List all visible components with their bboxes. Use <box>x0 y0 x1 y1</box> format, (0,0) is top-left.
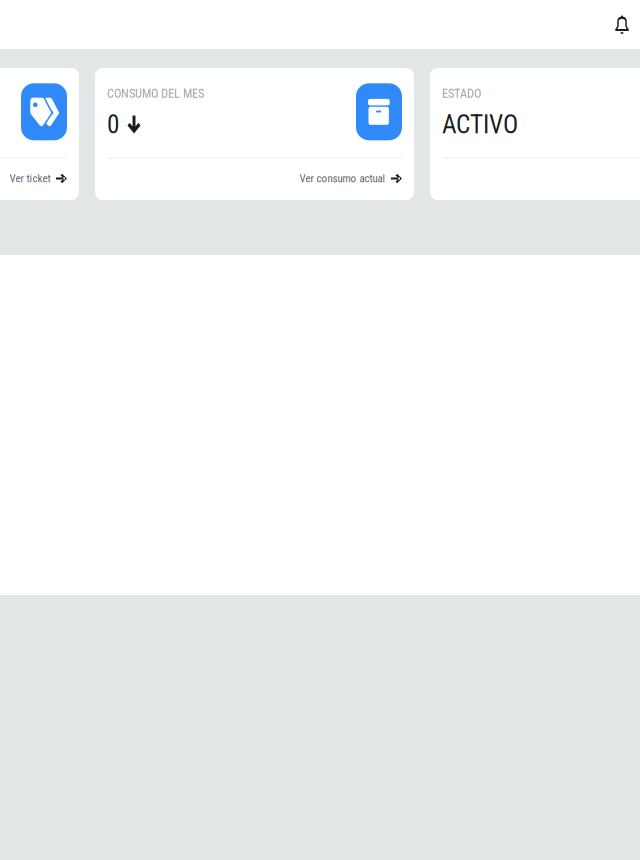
staticText: CONSUMO DEL MES <box>107 86 204 101</box>
button[interactable]: Notificaciones <box>605 2 639 46</box>
staticText: Ver ticket <box>9 172 50 185</box>
staticText: 0 <box>107 110 120 139</box>
button[interactable]: TICKET ACTUAL <box>0 68 79 200</box>
button[interactable]: CONSUMO DEL MES <box>95 68 414 200</box>
button[interactable]: ESTADO <box>430 68 640 200</box>
staticText: ESTADO <box>442 86 481 101</box>
staticText: ACTIVO <box>442 110 518 139</box>
staticText: Ver consumo actual <box>299 172 385 185</box>
